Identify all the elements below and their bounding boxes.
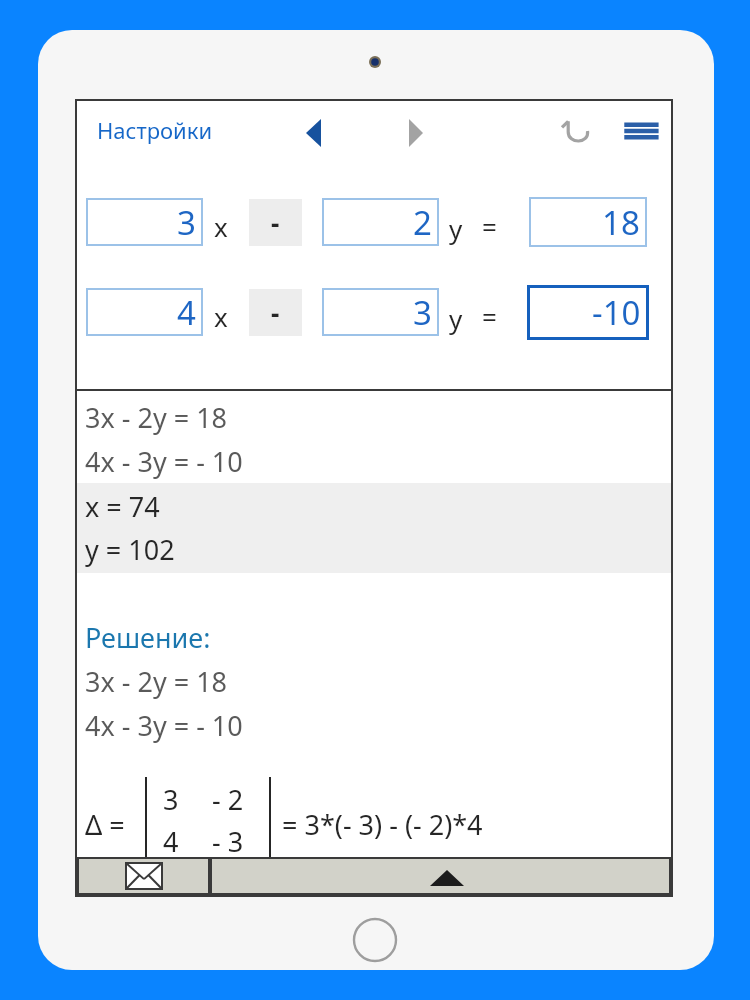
staticText: 4x - 3y = - 10: [85, 707, 243, 744]
staticText: -: [271, 205, 280, 240]
staticText: 3x - 2y = 18: [85, 399, 228, 436]
button[interactable]: Coefficient 4: [86, 288, 203, 336]
button[interactable]: Coefficient 3: [322, 288, 439, 336]
button[interactable]: Previous: [292, 111, 336, 155]
button[interactable]: Coefficient 18: [529, 197, 647, 247]
button[interactable]: Sign minus: [249, 289, 302, 336]
button[interactable]: Scroll up: [212, 859, 669, 893]
staticText: 3: [177, 200, 196, 244]
staticText: y: [449, 301, 463, 336]
staticText: x: [214, 209, 228, 244]
button[interactable]: Undo: [555, 109, 599, 153]
staticText: 4: [177, 290, 196, 334]
staticText: -10: [592, 290, 641, 335]
button[interactable]: Menu: [619, 109, 663, 153]
button[interactable]: Next: [394, 111, 438, 155]
staticText: y: [449, 211, 463, 246]
staticText: x = 74: [85, 488, 160, 525]
button[interactable]: Sign minus: [249, 199, 302, 246]
staticText: Δ =: [85, 806, 125, 843]
staticText: =: [482, 299, 497, 334]
button[interactable]: Coefficient -10: [527, 285, 649, 340]
staticText: x: [214, 299, 228, 334]
button[interactable]: Coefficient 3: [86, 198, 203, 246]
staticText: = 3*(- 3) - (- 2)*4: [282, 806, 483, 843]
staticText: 4: [163, 823, 179, 860]
staticText: =: [482, 209, 497, 244]
staticText: 3x - 2y = 18: [85, 663, 228, 700]
staticText: Решение:: [85, 619, 211, 656]
button[interactable]: Send email: [79, 859, 208, 893]
staticText: -: [271, 295, 280, 330]
button[interactable]: Настройки: [97, 115, 213, 145]
button[interactable]: Coefficient 2: [322, 198, 439, 246]
staticText: - 3: [212, 823, 244, 860]
staticText: 3: [413, 290, 432, 334]
staticText: - 2: [212, 781, 244, 818]
staticText: 18: [602, 200, 640, 245]
staticText: 2: [413, 200, 432, 244]
staticText: 3: [163, 781, 179, 818]
staticText: 4x - 3y = - 10: [85, 443, 243, 480]
staticText: y = 102: [85, 531, 175, 568]
